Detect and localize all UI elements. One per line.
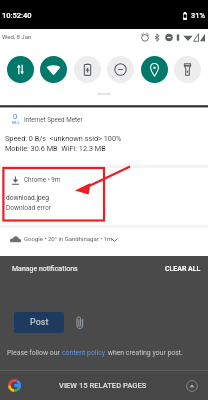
staticText: Manage notifications [12,265,78,273]
button[interactable]: VIEW 15 RELATED PAGES [0,371,208,400]
staticText: Download error [6,204,51,212]
staticText: when creating your post. [106,349,183,357]
staticText: 10:52:40 [2,11,32,20]
button[interactable]: Wi-Fi [40,56,67,83]
button[interactable]: Google • 20° in Gandhinagar • 1m [0,228,208,253]
button[interactable]: CLEAR ALL [163,263,203,275]
button[interactable]: Chrome • 9m [0,168,208,225]
button[interactable]: Battery saver [74,56,101,83]
staticText: VIEW 15 RELATED PAGES [59,381,147,390]
staticText: Post [30,317,49,328]
button[interactable]: Attach file [74,315,86,330]
button[interactable]: Mobile data [7,56,34,83]
staticText: Please follow our [7,349,62,357]
staticText: Wed, 8 Jan [2,33,32,40]
button[interactable]: Manage notifications [10,263,80,275]
button[interactable]: Flashlight [174,56,201,83]
other: Collapse [186,380,198,392]
button[interactable]: Do not disturb [107,56,134,83]
staticText: CLEAR ALL [165,265,201,273]
staticText: 0 [13,112,18,121]
staticText: Mobile: 30.6 MB WiFi: 12.3 MB [5,144,106,153]
staticText: download.jpeg [6,194,49,202]
staticText: Speed: 0 B/s <unknown ssid> 100% [5,134,122,143]
button[interactable]: Post [14,312,64,333]
staticText: 31% [191,11,206,20]
button[interactable]: 0 [0,108,208,165]
staticText: Internet Speed Meter [24,116,83,123]
staticText: KB/s [12,121,20,125]
staticText: content policy [62,349,106,357]
staticText: Google • 20° in Gandhinagar • 1m [24,235,113,242]
button[interactable]: Location [141,56,168,83]
staticText: Chrome • 9m [24,176,61,183]
